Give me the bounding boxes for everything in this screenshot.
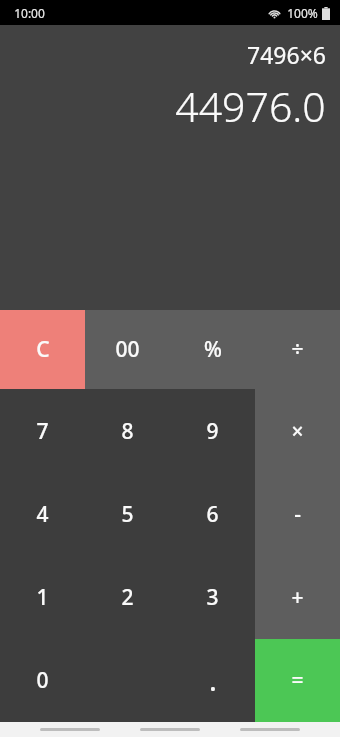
staticText: 1 [36, 583, 49, 612]
staticText: = [291, 666, 304, 695]
button[interactable]: Minus [255, 473, 340, 556]
other: Wi-Fi [268, 8, 281, 19]
button[interactable]: 6 [170, 473, 255, 556]
button[interactable]: 7 [0, 389, 85, 473]
button[interactable]: . [170, 639, 255, 722]
button[interactable]: Equals [255, 639, 340, 722]
staticText: 8 [121, 417, 134, 446]
button[interactable]: C [0, 310, 85, 389]
button[interactable]: 4 [0, 473, 85, 556]
staticText: 44976.0 [175, 78, 326, 134]
staticText: 4 [36, 500, 49, 529]
staticText: 3 [206, 583, 219, 612]
staticText: 10:00 [14, 5, 45, 21]
staticText: 6 [206, 500, 219, 529]
staticText: ÷ [291, 335, 304, 364]
button[interactable]: 5 [85, 473, 170, 556]
button[interactable]: Plus [255, 556, 340, 639]
staticText: 9 [206, 417, 219, 446]
staticText: - [294, 500, 301, 529]
button[interactable]: 00 [85, 310, 170, 389]
staticText: + [291, 583, 304, 612]
staticText: 100% [287, 5, 318, 21]
staticText: 5 [121, 500, 134, 529]
other: Battery [322, 7, 330, 20]
button[interactable]: 0 [0, 639, 85, 722]
staticText: 00 [115, 335, 140, 364]
staticText: 2 [121, 583, 134, 612]
staticText: C [36, 335, 50, 364]
button[interactable]: 9 [170, 389, 255, 473]
button[interactable]: Divide [255, 310, 340, 389]
staticText: % [204, 335, 222, 364]
staticText: × [291, 417, 304, 446]
staticText: . [209, 662, 217, 699]
button[interactable]: Multiply [255, 389, 340, 473]
button[interactable]: % [170, 310, 255, 389]
button[interactable]: 8 [85, 389, 170, 473]
button[interactable]: 3 [170, 556, 255, 639]
button[interactable]: 2 [85, 556, 170, 639]
button[interactable]: 1 [0, 556, 85, 639]
staticText: 0 [36, 666, 49, 695]
staticText: 7 [36, 417, 49, 446]
staticText: 7496×6 [247, 39, 326, 70]
